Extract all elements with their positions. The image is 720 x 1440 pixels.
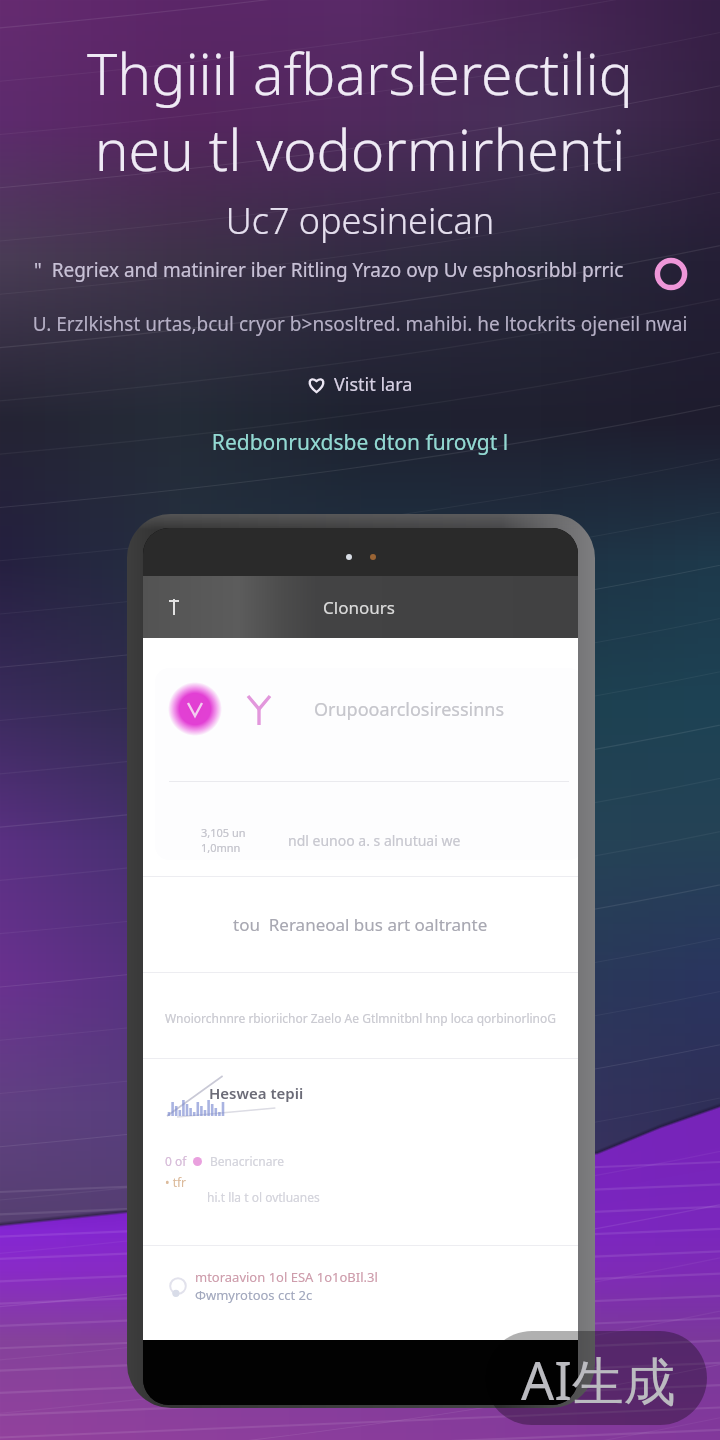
staticText: Clonours [323,596,395,619]
staticText: Vistit lara [334,372,413,397]
staticText: hi.t lla t ol ovtluanes [207,1189,320,1205]
staticText: Heswea tepii [209,1083,304,1103]
button[interactable]: tou Reraneoal bus art oaltrante [143,877,578,972]
staticText: Orupooarclosiressinns [314,697,505,722]
button[interactable]: Wnoiorchnnre rbioriichor Zaelo Ae Gtlmni… [143,973,578,1063]
staticText: U. Erzlkishst urtas,bcul cryor b>nsosltr… [22,311,698,337]
staticText: " Regriex and matinirer iber Ritling Yra… [34,257,654,283]
button[interactable]: Heswea tepii [143,1059,578,1245]
staticText: 3,105 un 1,0mnn [201,825,246,855]
staticText: AI生成 [521,1344,676,1415]
staticText: Redbonruxdsbe dton furovgt l [0,428,720,457]
staticText: Benacricnare [210,1153,284,1169]
staticText: Thgiiil afbarslerectiliq [0,34,720,112]
staticText: Wnoiorchnnre rbioriichor Zaelo Ae Gtlmni… [165,1010,556,1026]
staticText: neu tl vodormirhenti [0,110,720,188]
staticText: ndl eunoo a. s alnutuai we [288,831,461,850]
button[interactable]: mtoraavion 1ol ESA 1o1oBIl.3l [165,1246,578,1326]
button[interactable]: Menu [143,576,205,638]
staticText: mtoraavion 1ol ESA 1o1oBIl.3l [195,1268,378,1286]
staticText: Uc7 opesineican [0,196,720,245]
button[interactable]: Orupooarclosiressinns [155,668,578,860]
staticText: tou Reraneoal bus art oaltrante [233,913,488,936]
staticText: Φwmyrotoos cct 2c [195,1286,313,1304]
staticText: 0 of [165,1153,187,1169]
staticText: • tfr [165,1174,187,1190]
